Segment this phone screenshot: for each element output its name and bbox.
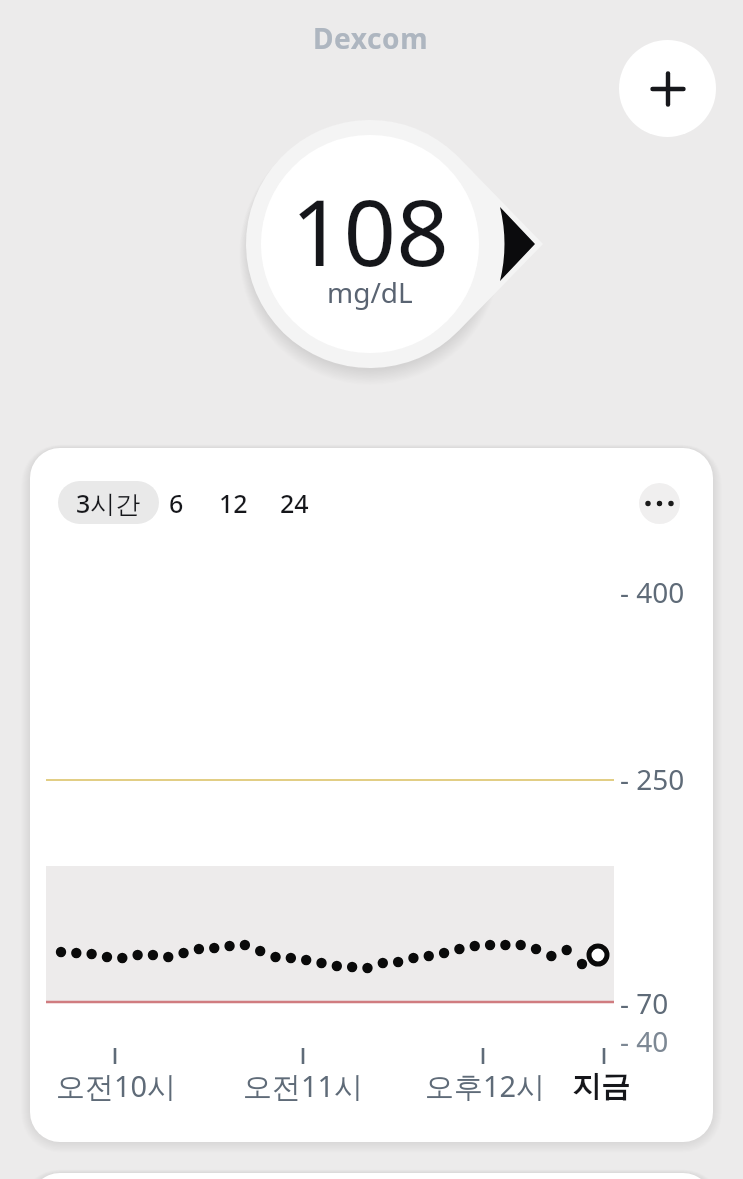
staticText: - 70 — [620, 984, 669, 1022]
button[interactable]: 12 — [207, 481, 259, 524]
staticText: 오전11시 — [243, 1066, 364, 1106]
staticText: 108 — [291, 168, 449, 293]
staticText: 12 — [219, 486, 248, 520]
staticText: 오전10시 — [56, 1066, 177, 1106]
staticText: - 250 — [620, 760, 685, 798]
staticText: - 40 — [620, 1022, 669, 1060]
button[interactable]: Next card — [30, 1173, 713, 1179]
button[interactable]: More options — [639, 483, 680, 524]
button[interactable]: Glucose 108 mg/dL, rising steady — [230, 100, 570, 390]
staticText: 24 — [280, 486, 309, 520]
staticText: - 400 — [620, 573, 685, 611]
staticText: Dexcom — [313, 19, 429, 49]
staticText: 오후12시 — [425, 1066, 546, 1106]
staticText: 3시간 — [76, 486, 141, 520]
staticText: 6 — [169, 486, 184, 520]
button[interactable]: 6 — [150, 481, 202, 524]
button[interactable]: Add event — [619, 40, 716, 137]
staticText: 지금 — [572, 1068, 630, 1105]
button[interactable]: 3시간 — [58, 481, 159, 524]
button[interactable]: 24 — [268, 481, 320, 524]
staticText: mg/dL — [327, 273, 413, 311]
